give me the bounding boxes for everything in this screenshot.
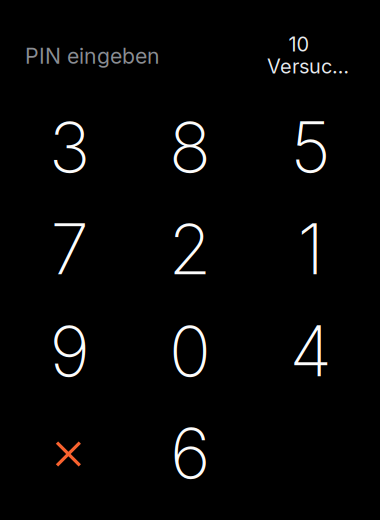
staticText: PIN eingeben xyxy=(25,43,160,69)
button[interactable]: 8 xyxy=(130,96,250,198)
button[interactable]: 5 xyxy=(250,96,371,198)
button[interactable]: 4 xyxy=(250,300,371,402)
staticText: 0 xyxy=(169,309,211,393)
staticText: 4 xyxy=(290,309,332,393)
staticText: 8 xyxy=(169,105,211,189)
button[interactable]: 0 xyxy=(130,300,250,402)
staticText: 5 xyxy=(291,105,331,189)
staticText: 7 xyxy=(50,207,88,291)
staticText: 9 xyxy=(49,309,89,393)
button[interactable]: 9 xyxy=(9,300,130,402)
staticText: 1 xyxy=(298,207,324,291)
staticText: 10 xyxy=(288,32,309,56)
button[interactable]: Löschen xyxy=(9,402,130,504)
button[interactable]: 3 xyxy=(9,96,130,198)
staticText: 6 xyxy=(170,411,210,495)
button[interactable]: 2 xyxy=(130,198,250,300)
staticText: 2 xyxy=(168,207,211,291)
staticText: Versuc… xyxy=(267,54,349,78)
button[interactable]: 1 xyxy=(250,198,371,300)
staticText: 3 xyxy=(49,105,90,189)
button[interactable]: 6 xyxy=(130,402,250,504)
button[interactable]: 7 xyxy=(9,198,130,300)
